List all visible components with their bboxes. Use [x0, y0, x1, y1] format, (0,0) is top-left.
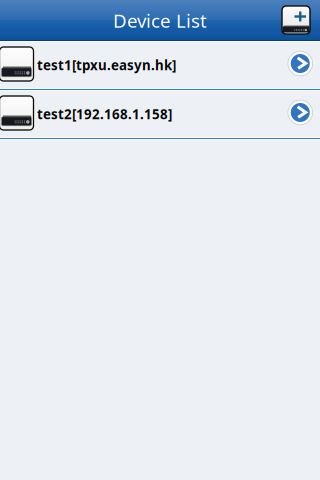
button[interactable]: Add device [282, 6, 320, 34]
button[interactable]: test1[tpxu.easyn.hk] [0, 42, 320, 88]
button[interactable]: test2[192.168.1.158] [0, 91, 320, 137]
staticText: Device List [113, 8, 207, 33]
staticText: test2[192.168.1.158] [37, 105, 172, 123]
staticText: test1[tpxu.easyn.hk] [37, 56, 176, 74]
